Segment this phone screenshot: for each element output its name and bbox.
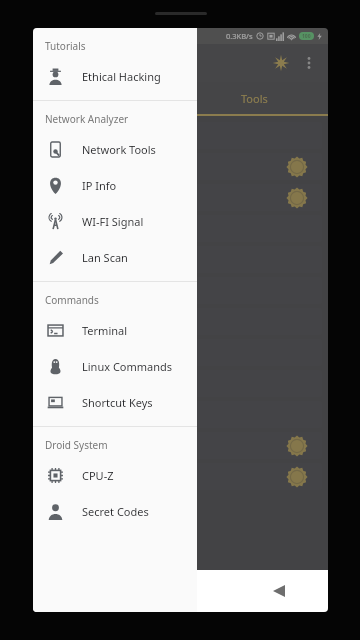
button[interactable]: Shortcut Keys <box>33 384 197 420</box>
button[interactable]: Ethical Hacking <box>33 58 197 94</box>
staticText: Shortcut Keys <box>82 395 153 410</box>
staticText: Tutorials <box>84 91 129 106</box>
button[interactable] <box>39 122 322 149</box>
button[interactable] <box>39 184 322 211</box>
staticText: Terminal <box>82 323 128 338</box>
staticText: Network Analyzer <box>45 112 129 126</box>
button[interactable] <box>39 246 322 273</box>
button[interactable]: Rate <box>266 48 296 78</box>
staticText: Tutorials <box>45 39 86 53</box>
staticText: Lan Scan <box>82 250 128 265</box>
button[interactable]: IP Info <box>33 167 197 203</box>
button[interactable]: Terminal <box>33 312 197 348</box>
staticText: IP Info <box>82 178 117 193</box>
button[interactable] <box>39 432 322 459</box>
staticText: Droid System <box>45 438 108 452</box>
button[interactable] <box>39 308 322 335</box>
staticText: Tools <box>241 91 268 106</box>
staticText: Secret Codes <box>82 504 149 519</box>
staticText: Linux Commands <box>82 359 173 374</box>
button[interactable] <box>39 370 322 397</box>
staticText: 0.3KB/s <box>226 31 253 41</box>
button[interactable]: Tools <box>180 82 328 114</box>
staticText: Ethical Hacking Code <box>45 54 173 72</box>
staticText: Network Tools <box>82 142 156 157</box>
staticText: 100 <box>302 33 311 40</box>
button[interactable]: Secret Codes <box>33 493 197 529</box>
staticText: WI-FI Signal <box>82 214 144 229</box>
staticText: Commands <box>45 293 99 307</box>
button[interactable]: CPU-Z <box>33 457 197 493</box>
button[interactable]: Lan Scan <box>33 239 197 275</box>
button[interactable]: Back <box>230 570 328 612</box>
button[interactable] <box>39 463 322 490</box>
button[interactable] <box>39 215 322 242</box>
button[interactable] <box>39 153 322 180</box>
staticText: CPU-Z <box>82 468 114 483</box>
button[interactable] <box>39 401 322 428</box>
button[interactable] <box>39 277 322 304</box>
button[interactable]: Tutorials <box>33 82 180 114</box>
button[interactable]: Linux Commands <box>33 348 197 384</box>
button[interactable]: Network Tools <box>33 131 197 167</box>
button[interactable]: Recent apps <box>33 570 132 612</box>
staticText: Ethical Hacking <box>82 69 161 84</box>
button[interactable]: WI-FI Signal <box>33 203 197 239</box>
button[interactable] <box>39 339 322 366</box>
button[interactable]: More options <box>296 50 322 76</box>
